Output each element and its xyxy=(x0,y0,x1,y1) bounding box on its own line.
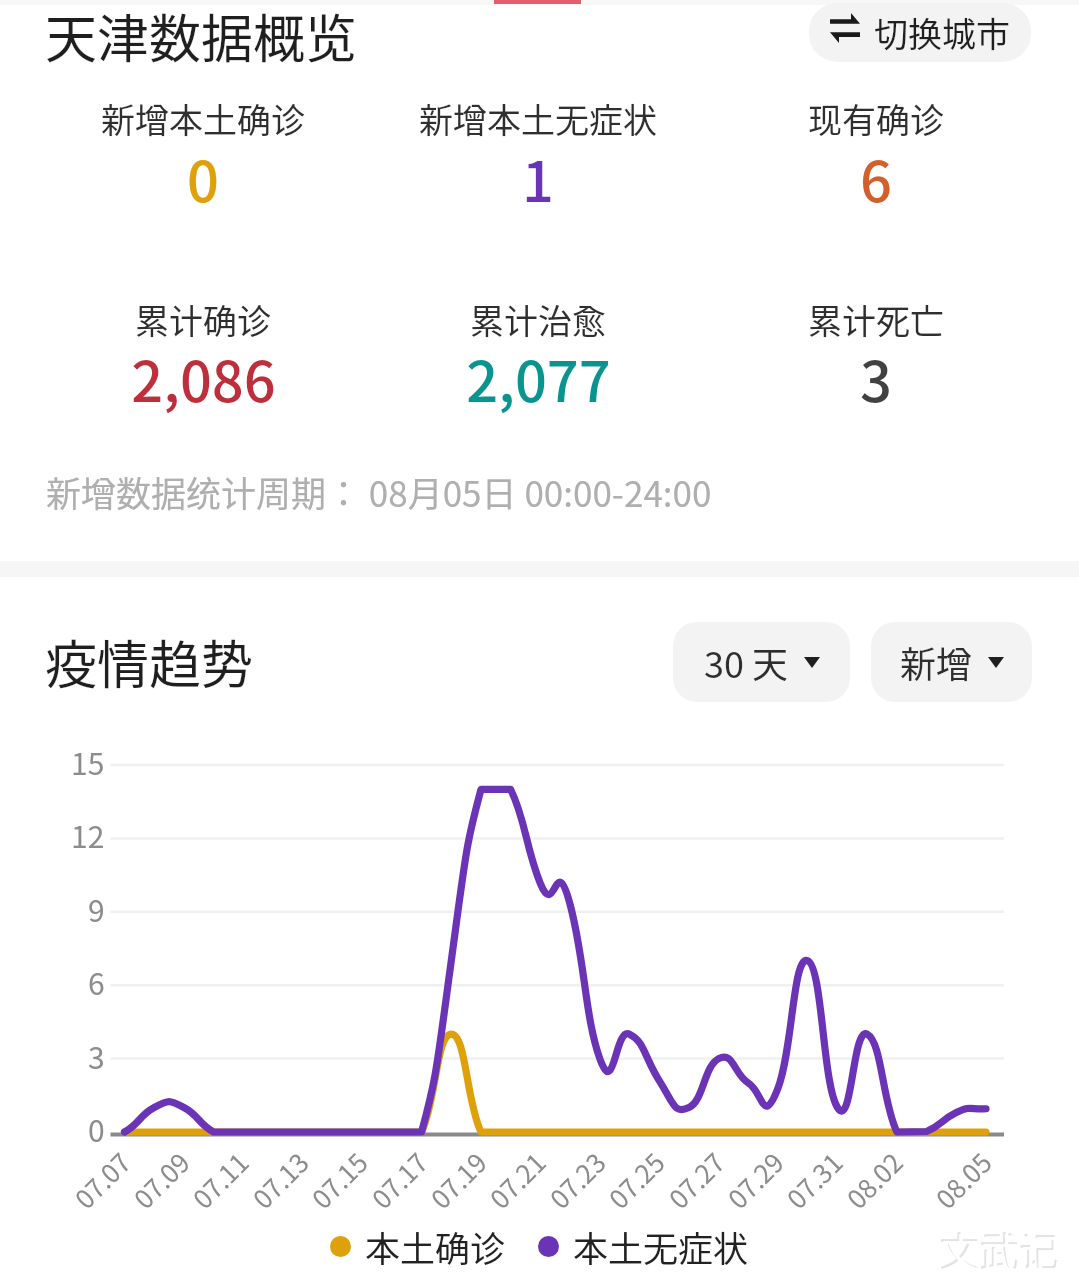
staticText: 0 xyxy=(88,1107,105,1150)
staticText: 07.27 xyxy=(660,1144,732,1216)
staticText: 现有确诊 xyxy=(808,94,944,143)
staticText: 疫情趋势 xyxy=(45,624,254,699)
staticText: 累计死亡 xyxy=(808,295,944,344)
staticText: 07.11 xyxy=(184,1144,256,1216)
staticText: 6 xyxy=(88,960,105,1003)
staticText: 累计治愈 xyxy=(470,295,606,344)
staticText: 07.19 xyxy=(422,1144,494,1216)
staticText: 30 天 xyxy=(704,636,789,688)
staticText: 文武记 xyxy=(939,1220,1059,1278)
staticText: 切换城市 xyxy=(874,8,1010,57)
button[interactable]: 切换城市 xyxy=(809,3,1031,62)
staticText: 2,086 xyxy=(131,337,276,418)
staticText: 07.17 xyxy=(363,1144,435,1216)
staticText: 累计确诊 xyxy=(135,295,271,344)
staticText: 新增数据统计周期： 08月05日 00:00-24:00 xyxy=(46,466,712,517)
staticText: 07.07 xyxy=(66,1144,138,1216)
staticText: 6 xyxy=(860,137,892,218)
staticText: 07.25 xyxy=(600,1144,672,1216)
staticText: 08.02 xyxy=(838,1144,910,1216)
staticText: 天津数据概览 xyxy=(45,0,358,73)
button[interactable]: 本土无症状 xyxy=(538,1221,749,1272)
staticText: 新增 xyxy=(900,636,973,688)
staticText: 07.13 xyxy=(244,1144,316,1216)
staticText: 1 xyxy=(522,137,554,218)
button[interactable]: 新增 xyxy=(871,622,1032,702)
staticText: 15 xyxy=(71,740,105,783)
staticText: 08.05 xyxy=(927,1144,999,1216)
staticText: 07.15 xyxy=(303,1144,375,1216)
staticText: 2,077 xyxy=(466,337,611,418)
staticText: 9 xyxy=(88,887,105,930)
staticText: 07.21 xyxy=(481,1144,553,1216)
staticText: 新增本土确诊 xyxy=(101,94,305,143)
staticText: 3 xyxy=(88,1034,105,1077)
staticText: 新增本土无症状 xyxy=(419,94,657,143)
staticText: 本土确诊 xyxy=(365,1221,506,1272)
staticText: 07.29 xyxy=(719,1144,791,1216)
staticText: 3 xyxy=(860,337,892,418)
button[interactable]: 本土确诊 xyxy=(330,1221,506,1272)
button[interactable]: 30 天 xyxy=(673,622,850,702)
staticText: 07.09 xyxy=(125,1144,197,1216)
staticText: 07.23 xyxy=(541,1144,613,1216)
staticText: 本土无症状 xyxy=(573,1221,749,1272)
staticText: 07.31 xyxy=(778,1144,850,1216)
staticText: 文武记 xyxy=(941,1222,1061,1280)
staticText: 0 xyxy=(187,137,219,218)
staticText: 12 xyxy=(71,813,105,856)
